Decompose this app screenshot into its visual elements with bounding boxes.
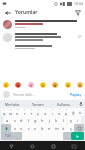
button[interactable]: . [63,132,71,140]
button[interactable]: s [11,116,18,124]
button[interactable]: c [25,124,32,132]
button[interactable]: h [39,116,46,124]
button[interactable]: 0 [63,108,70,116]
staticText: 4 [24,108,26,111]
button[interactable]: Paylaş [69,92,82,97]
button[interactable]: Filter [73,8,82,17]
button[interactable]: b [39,124,46,132]
button[interactable]: ?123 [1,132,14,140]
button[interactable]: Emoji [64,81,71,88]
staticText: Tamam [32,102,44,107]
staticText: p [65,111,68,116]
staticText: 1 [4,108,6,111]
staticText: o [58,111,61,116]
staticText: 5 [31,108,33,111]
button[interactable]: m [53,124,60,132]
staticText: 8 [52,108,54,111]
button[interactable]: Home [29,143,35,149]
button[interactable]: Emoji [51,81,58,88]
button[interactable]: Like [76,33,82,39]
button[interactable]: z [11,124,18,132]
staticText: k [55,118,58,123]
button[interactable]: Emoji [14,81,21,88]
button[interactable]: 3 [14,108,21,116]
staticText: Yorum ekle... [13,92,35,97]
button[interactable]: ğ [70,108,77,116]
button[interactable]: Kullanıcı [51,100,77,108]
button[interactable]: Hide keyboard [71,143,77,149]
staticText: 3 [17,108,19,111]
staticText: y [37,111,40,116]
staticText: g [34,118,37,123]
button[interactable]: 8 [49,108,56,116]
button[interactable]: Emoji [76,81,83,88]
button[interactable]: Shift [1,124,11,132]
button[interactable]: g [32,116,39,124]
staticText: ı [52,111,54,116]
button[interactable]: ü [77,108,84,116]
staticText: Paylaş [70,92,81,97]
button[interactable]: j [46,116,53,124]
staticText: m [55,126,59,131]
staticText: ş [70,118,72,123]
button[interactable]: 7 [42,108,49,116]
staticText: i [77,118,79,123]
button[interactable]: k [53,116,60,124]
button[interactable]: a [4,116,11,124]
button[interactable]: 5 [28,108,35,116]
button[interactable]: Emoji [27,81,34,88]
button[interactable]: 4 [21,108,28,116]
staticText: n [48,126,51,131]
button[interactable]: 9 [56,108,63,116]
button[interactable]: Like [0,31,85,44]
staticText: w [9,111,13,116]
button[interactable]: Merhaba [0,100,25,108]
staticText: ç [70,126,72,131]
button[interactable]: 1 [1,108,7,116]
staticText: j [49,118,51,123]
button[interactable]: l [60,116,67,124]
staticText: ö [62,126,65,131]
staticText: r [24,111,26,116]
button[interactable]: , [14,132,22,140]
staticText: e [16,111,19,116]
button[interactable]: ş [67,116,74,124]
staticText: s [14,118,16,123]
button[interactable]: f [25,116,32,124]
button[interactable]: Emoji [39,81,46,88]
button[interactable]: Back [3,8,12,17]
button[interactable]: 2 [7,108,14,116]
staticText: ü [79,110,82,115]
button[interactable]: n [46,124,53,132]
staticText: 2 [10,108,12,111]
button[interactable]: v [32,124,39,132]
staticText: h [41,118,44,123]
staticText: u [44,111,47,116]
button[interactable] [0,44,85,50]
staticText: b [41,126,44,131]
staticText: t [31,111,33,116]
button[interactable]: ö [60,124,67,132]
button[interactable]: Emoji [2,81,9,88]
button[interactable]: Tamam [25,100,51,108]
button[interactable]: 6 [35,108,42,116]
staticText: . [66,134,68,139]
button[interactable] [0,18,85,31]
button[interactable]: ç [67,124,74,132]
staticText: d [20,118,23,123]
button[interactable]: Voice input [77,100,85,108]
button[interactable]: Back [8,143,14,149]
staticText: 9 [59,108,61,111]
button[interactable]: x [18,124,25,132]
button[interactable]: Recent apps [50,143,56,149]
button[interactable]: Yorum ekle... [13,92,69,97]
staticText: x [20,126,23,131]
button[interactable]: Backspace [74,124,84,132]
staticText: ?123 [5,134,11,138]
staticText: Kullanıcı [57,102,71,107]
button[interactable]: i [74,116,81,124]
button[interactable]: d [18,116,25,124]
staticText: z [14,126,16,131]
button[interactable]: Send [71,132,84,140]
